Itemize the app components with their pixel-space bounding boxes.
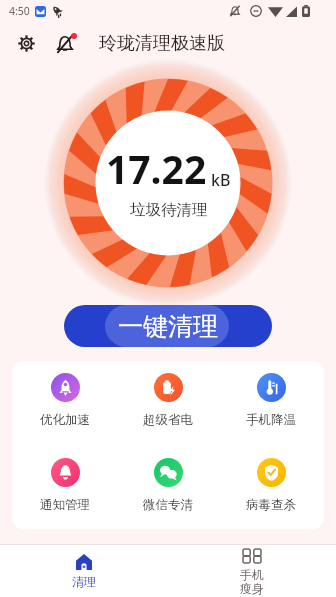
button[interactable]: 病毒查杀 [221, 458, 321, 513]
staticText: 超级省电 [143, 412, 193, 428]
button[interactable]: 清理 [0, 545, 168, 597]
button[interactable]: 手机 瘦身 [168, 545, 336, 597]
staticText: 通知管理 [40, 497, 90, 513]
staticText: kB [211, 169, 231, 191]
button[interactable]: 手机降温 [221, 373, 321, 428]
button[interactable]: 通知管理 [15, 458, 115, 513]
staticText: 手机 瘦身 [240, 567, 264, 597]
button[interactable]: 优化加速 [15, 373, 115, 428]
staticText: 病毒查杀 [246, 497, 296, 513]
staticText: 17.22 [106, 142, 207, 195]
staticText: 4:50 [9, 4, 30, 18]
staticText: 垃圾待清理 [130, 200, 208, 220]
button[interactable]: Notifications [45, 24, 84, 63]
button[interactable]: 一键清理 [64, 305, 272, 347]
staticText: 优化加速 [40, 412, 90, 428]
staticText: 手机降温 [246, 412, 296, 428]
button[interactable]: 超级省电 [118, 373, 218, 428]
staticText: 玲珑清理极速版 [99, 32, 225, 55]
staticText: 微信专清 [143, 497, 193, 513]
button[interactable]: 微信专清 [118, 458, 218, 513]
staticText: 清理 [72, 574, 96, 589]
staticText: 一键清理 [118, 311, 218, 342]
button[interactable]: Settings [7, 24, 46, 63]
